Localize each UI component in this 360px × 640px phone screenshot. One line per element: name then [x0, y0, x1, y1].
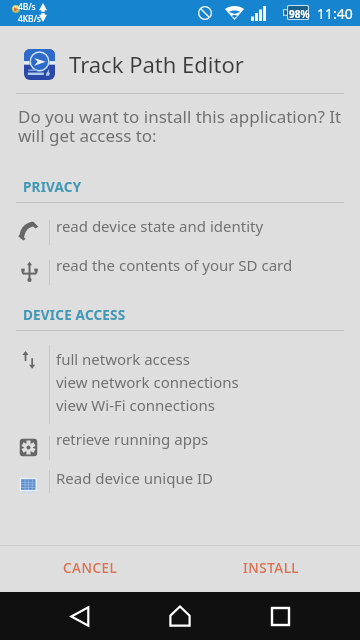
staticText: read device state and identity [56, 216, 264, 236]
staticText: DEVICE ACCESS [23, 306, 126, 324]
staticText: full network access view network connect… [56, 349, 239, 416]
staticText: Do you want to install this application?… [18, 105, 348, 147]
button[interactable]: Recent apps [256, 592, 304, 640]
staticText: Track Path Editor [69, 49, 244, 79]
button[interactable]: full network access view network connect… [0, 343, 360, 422]
staticText: CANCEL [63, 559, 118, 577]
staticText: Read device unique ID [56, 468, 214, 488]
button[interactable]: retrieve running apps [0, 423, 360, 447]
staticText: read the contents of your SD card [56, 255, 293, 275]
staticText: 4B/s [18, 1, 36, 13]
button[interactable]: Read device unique ID [0, 462, 360, 485]
button[interactable]: INSTALL [180, 546, 360, 592]
button[interactable]: Back [56, 592, 104, 640]
staticText: 98% [289, 7, 310, 21]
staticText: 4KB/s [18, 13, 41, 25]
button[interactable]: CANCEL [0, 546, 180, 592]
staticText: PRIVACY [23, 178, 82, 196]
staticText: 11:40 [317, 4, 353, 23]
staticText: retrieve running apps [56, 429, 209, 449]
staticText: INSTALL [243, 559, 300, 577]
button[interactable]: read the contents of your SD card [0, 249, 360, 274]
button[interactable]: Home [156, 592, 204, 640]
button[interactable]: read device state and identity [0, 210, 360, 235]
